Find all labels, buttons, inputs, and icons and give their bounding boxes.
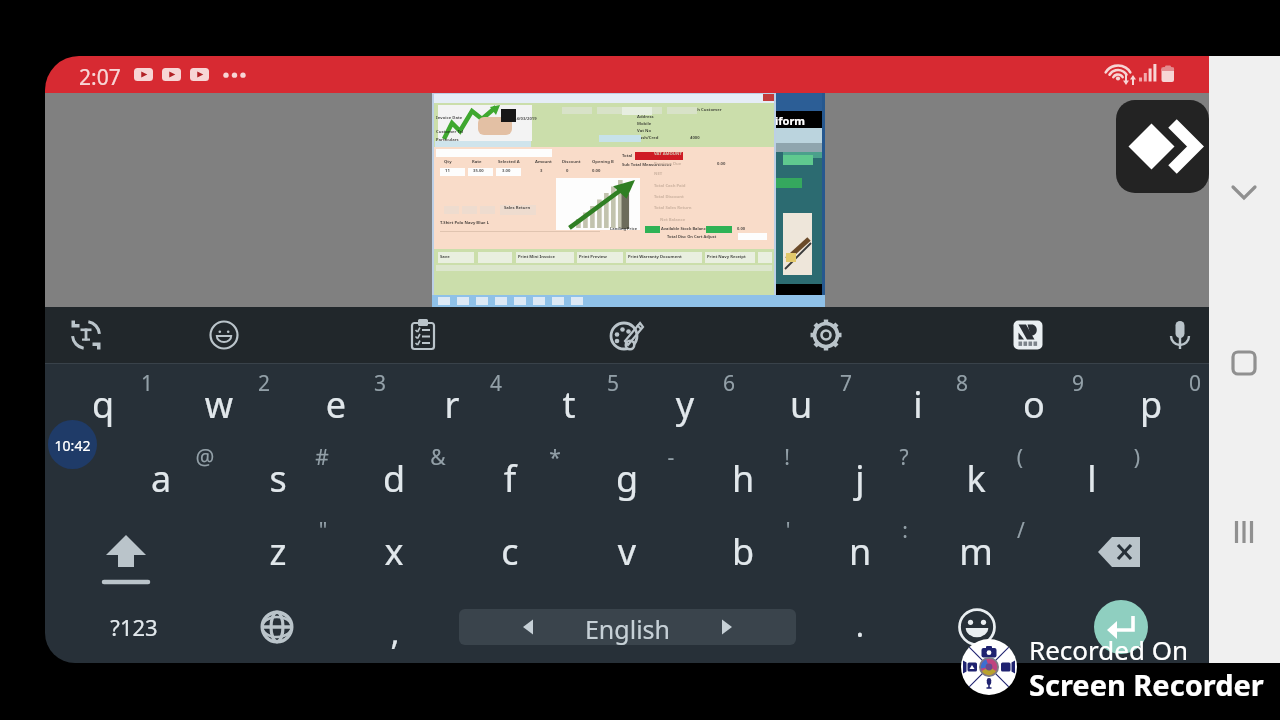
staticText: o: [976, 380, 1092, 429]
staticText: Print Navy Receipt: [707, 254, 746, 260]
staticText: 2:07: [79, 63, 121, 92]
staticText: x: [336, 527, 452, 576]
button[interactable]: AnyDesk: [1116, 100, 1209, 193]
button[interactable]: o: [976, 370, 1092, 443]
staticText: 6: [709, 369, 749, 398]
button[interactable]: x: [336, 517, 452, 590]
staticText: Amount: [535, 159, 552, 165]
staticText: Qty: [444, 159, 452, 165]
button[interactable]: Screen recorder widget: [961, 639, 1017, 695]
staticText: ,: [345, 609, 445, 655]
button[interactable]: g: [569, 444, 685, 517]
staticText: Sub Total Measurement: [622, 162, 672, 168]
button[interactable]: Back: [1220, 168, 1268, 216]
staticText: Rate: [472, 159, 482, 165]
staticText: u: [743, 380, 859, 429]
staticText: 11: [445, 168, 450, 174]
button[interactable]: j: [802, 444, 918, 517]
staticText: 8: [942, 369, 982, 398]
staticText: m: [918, 527, 1034, 576]
button[interactable]: v: [569, 517, 685, 590]
staticText: 0.00: [717, 161, 726, 167]
staticText: 2: [244, 369, 284, 398]
button[interactable]: p: [1093, 370, 1209, 443]
button[interactable]: q: [45, 370, 161, 443]
staticText: @: [185, 443, 225, 472]
staticText: ': [768, 516, 808, 545]
staticText: Save: [440, 254, 450, 260]
staticText: VAT AMOUNT: [654, 151, 682, 157]
button[interactable]: s: [220, 444, 336, 517]
button[interactable]: Translate: [58, 307, 114, 363]
staticText: p: [1093, 380, 1209, 429]
button[interactable]: d: [336, 444, 452, 517]
staticText: ": [303, 516, 343, 545]
staticText: i: [860, 380, 976, 429]
button[interactable]: Theme: [597, 307, 653, 363]
button[interactable]: ,: [345, 595, 445, 659]
staticText: Customer Tel: [436, 129, 464, 135]
button[interactable]: Change language: [233, 595, 321, 659]
staticText: a: [103, 454, 219, 503]
staticText: ?123: [84, 612, 184, 642]
staticText: 14/03/2019: [514, 116, 537, 122]
button[interactable]: r: [394, 370, 510, 443]
staticText: 10:42: [48, 436, 97, 455]
button[interactable]: Recent apps: [1220, 508, 1268, 556]
button[interactable]: u: [743, 370, 859, 443]
staticText: 35.00: [473, 168, 484, 174]
button[interactable]: a: [103, 444, 219, 517]
button[interactable]: Home: [1220, 339, 1268, 387]
staticText: f: [452, 454, 568, 503]
staticText: 5: [593, 369, 633, 398]
button[interactable]: b: [685, 517, 801, 590]
staticText: English: [459, 612, 796, 645]
button[interactable]: Settings: [798, 307, 854, 363]
staticText: y: [627, 380, 743, 429]
button[interactable]: y: [627, 370, 743, 443]
button[interactable]: Recording time: [48, 420, 97, 469]
button[interactable]: i: [860, 370, 976, 443]
button[interactable]: Clipboard: [395, 307, 451, 363]
button[interactable]: h: [685, 444, 801, 517]
staticText: 0.00: [592, 168, 601, 174]
staticText: 4000: [690, 135, 700, 141]
button[interactable]: Shift: [45, 517, 220, 590]
button[interactable]: News: [1000, 307, 1056, 363]
staticText: 7: [826, 369, 866, 398]
button[interactable]: t: [511, 370, 627, 443]
button[interactable]: Emoji: [196, 307, 252, 363]
button[interactable]: English: [459, 609, 796, 645]
staticText: &: [418, 443, 458, 472]
button[interactable]: ?123: [84, 595, 184, 659]
staticText: Print Warranty Document: [628, 254, 682, 260]
staticText: q: [45, 380, 161, 429]
button[interactable]: Voice input: [1152, 307, 1208, 363]
staticText: Opening B: [592, 159, 614, 165]
button[interactable]: w: [161, 370, 277, 443]
staticText: e: [278, 380, 394, 429]
staticText: Invoice Date: [436, 115, 463, 121]
button[interactable]: .: [810, 595, 910, 659]
staticText: 3.00: [502, 168, 511, 174]
button[interactable]: Backspace: [1034, 517, 1209, 590]
staticText: Screen Recorder: [1029, 665, 1264, 704]
button[interactable]: c: [452, 517, 568, 590]
button[interactable]: e: [278, 370, 394, 443]
staticText: Cash Customer: [690, 107, 722, 113]
button[interactable]: z: [220, 517, 336, 590]
staticText: Cash/Cred: [637, 135, 659, 141]
staticText: 4: [476, 369, 516, 398]
staticText: ): [1117, 443, 1157, 472]
button[interactable]: n: [802, 517, 918, 590]
button[interactable]: f: [452, 444, 568, 517]
button[interactable]: k: [918, 444, 1034, 517]
staticText: Discount: [562, 159, 581, 165]
staticText: c: [452, 527, 568, 576]
button[interactable]: l: [1034, 444, 1150, 517]
staticText: h: [685, 454, 801, 503]
button[interactable]: Emoji: [933, 595, 1021, 659]
button[interactable]: Enter: [1094, 600, 1148, 654]
button[interactable]: m: [918, 517, 1034, 590]
